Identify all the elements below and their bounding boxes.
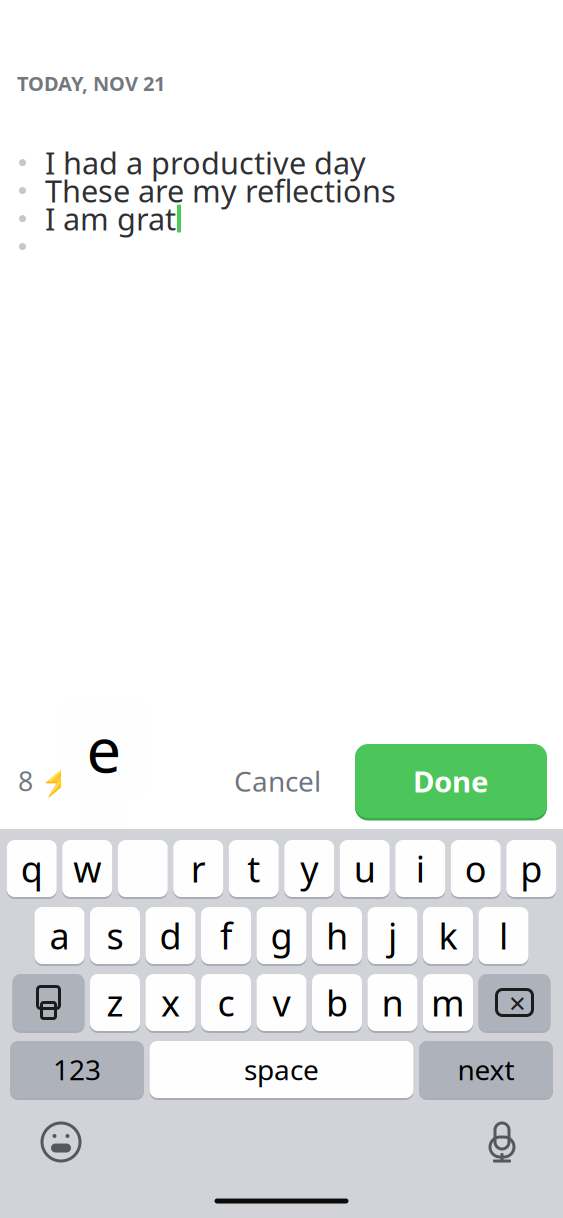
button[interactable]: q (7, 838, 57, 899)
button[interactable]: next (419, 1039, 553, 1100)
staticText: u (354, 845, 376, 892)
button[interactable]: d (145, 905, 195, 966)
staticText: 123 (53, 1051, 101, 1088)
staticText: h (326, 912, 348, 959)
button[interactable]: Cancel (224, 754, 331, 808)
button[interactable]: m (423, 972, 473, 1033)
button[interactable]: c (201, 972, 251, 1033)
button[interactable]: o (451, 838, 501, 899)
staticText: f (220, 912, 232, 959)
staticText: y (300, 845, 318, 892)
button[interactable]: u (340, 838, 390, 899)
button[interactable]: y (284, 838, 334, 899)
staticText: × (509, 983, 526, 1022)
button[interactable]: r (173, 838, 223, 899)
staticText: z (106, 979, 123, 1026)
button[interactable]: i (395, 838, 445, 899)
button[interactable]: l (478, 905, 528, 966)
button[interactable] (0, 233, 563, 261)
button[interactable]: v (256, 972, 306, 1033)
staticText: ⚡ (40, 764, 77, 798)
button[interactable]: I am grat (0, 205, 563, 233)
staticText: l (499, 912, 508, 959)
staticText: Done (413, 761, 489, 800)
staticText: These are my reflections (45, 170, 396, 211)
staticText: TODAY, NOV 21 (17, 70, 165, 97)
button[interactable]: Emoji (28, 1109, 94, 1175)
staticText: g (270, 912, 292, 959)
button[interactable]: I had a productive day (0, 149, 563, 177)
button[interactable]: n (367, 972, 417, 1033)
button[interactable]: h (312, 905, 362, 966)
button[interactable]: p (506, 838, 556, 899)
staticText: q (21, 845, 43, 892)
button[interactable]: x (145, 972, 195, 1033)
button[interactable]: Shift (12, 972, 84, 1033)
staticText: r (191, 845, 206, 892)
staticText: i (416, 845, 425, 892)
button[interactable]: 123 (10, 1039, 144, 1100)
button[interactable]: Done (355, 741, 547, 821)
button[interactable]: w (62, 838, 112, 899)
staticText: Cancel (234, 762, 321, 800)
button[interactable]: k (423, 905, 473, 966)
button[interactable] (118, 838, 168, 899)
staticText: next (457, 1051, 514, 1088)
button[interactable]: g (256, 905, 306, 966)
staticText: a (49, 912, 69, 959)
button[interactable]: t (229, 838, 279, 899)
button[interactable]: a (34, 905, 84, 966)
staticText: n (381, 979, 403, 1026)
button[interactable]: z (90, 972, 140, 1033)
staticText: I had a productive day (45, 142, 366, 183)
staticText: j (388, 912, 397, 959)
staticText: m (431, 979, 465, 1026)
staticText: w (73, 845, 101, 892)
staticText: t (247, 845, 260, 892)
staticText: I am grat (45, 198, 176, 239)
staticText: p (520, 845, 542, 892)
button[interactable]: 8 (14, 755, 81, 807)
staticText: k (438, 912, 457, 959)
staticText: e (86, 708, 121, 790)
staticText: x (161, 979, 180, 1026)
staticText: d (159, 912, 181, 959)
button[interactable]: space (149, 1039, 413, 1100)
staticText: c (217, 979, 234, 1026)
staticText: s (106, 912, 123, 959)
button[interactable]: s (90, 905, 140, 966)
staticText: 8 (18, 763, 33, 799)
button[interactable]: f (201, 905, 251, 966)
staticText: v (272, 979, 290, 1026)
button[interactable]: b (312, 972, 362, 1033)
staticText: space (244, 1051, 319, 1088)
button[interactable]: j (367, 905, 417, 966)
staticText: o (465, 845, 487, 892)
button[interactable]: Dictation (473, 1108, 531, 1176)
button[interactable]: Delete (478, 972, 550, 1033)
staticText: b (326, 979, 348, 1026)
button[interactable]: These are my reflections (0, 177, 563, 205)
